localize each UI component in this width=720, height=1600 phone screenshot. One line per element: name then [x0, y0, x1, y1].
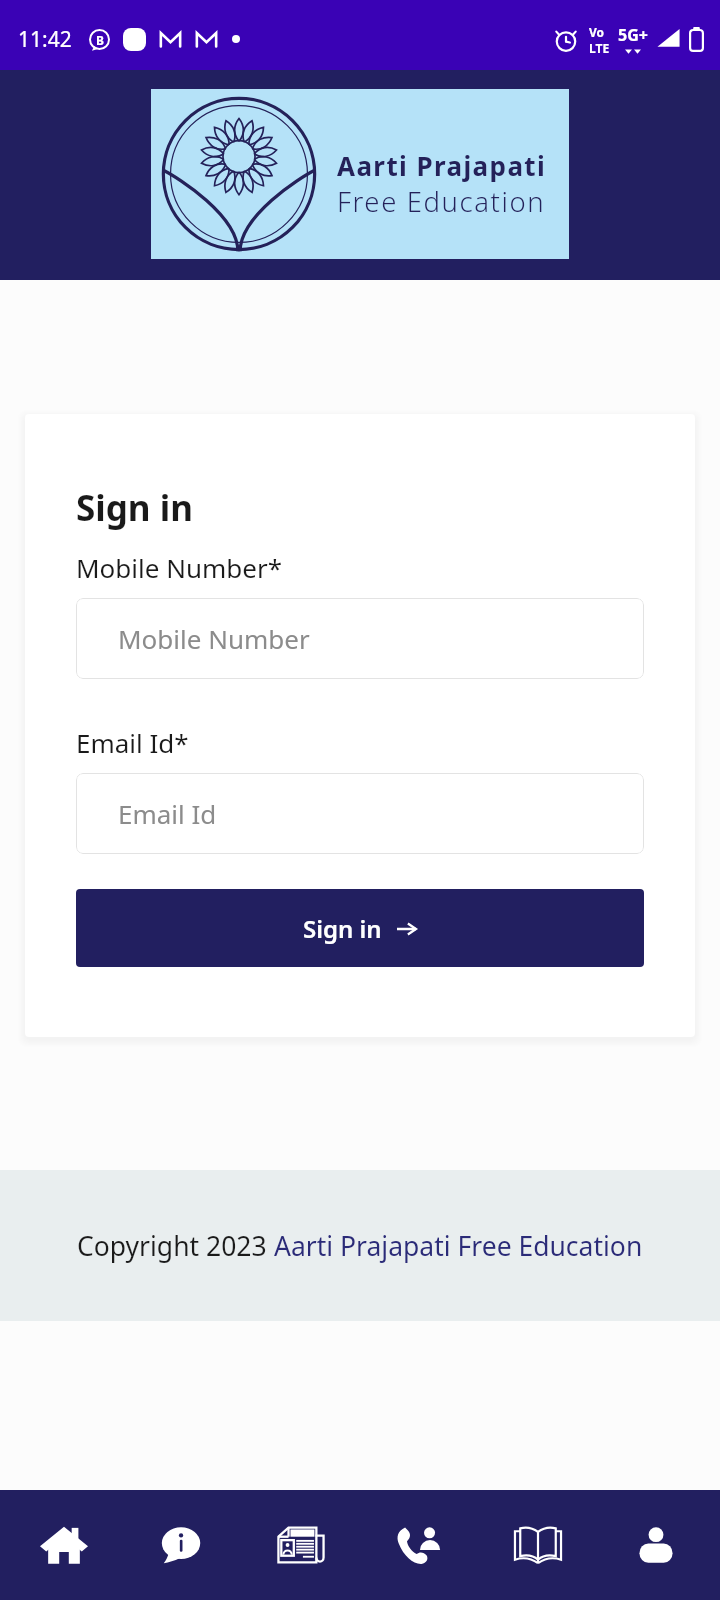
- button[interactable]: Courses: [483, 1490, 593, 1600]
- staticText: Mobile Number: [118, 621, 310, 656]
- button[interactable]: Email Id: [76, 773, 644, 854]
- staticText: Email Id: [118, 796, 217, 831]
- staticText: 11:42: [18, 25, 72, 54]
- staticText: Copyright 2023: [77, 1228, 274, 1264]
- button[interactable]: Aarti Prajapati Free Education: [274, 1228, 643, 1264]
- staticText: Sign in: [303, 912, 382, 945]
- button[interactable]: Contact: [364, 1490, 474, 1600]
- button[interactable]: Sign in: [76, 889, 644, 967]
- staticText: LTE: [589, 40, 610, 54]
- button[interactable]: Home: [9, 1490, 119, 1600]
- staticText: Email Id*: [76, 725, 189, 760]
- staticText: Mobile Number*: [76, 550, 282, 585]
- staticText: Free Education: [337, 183, 546, 220]
- staticText: Aarti Prajapati: [337, 148, 547, 183]
- staticText: Vo: [589, 24, 605, 40]
- staticText: B: [96, 32, 104, 48]
- button[interactable]: News: [246, 1490, 356, 1600]
- button[interactable]: Mobile Number: [76, 598, 644, 679]
- staticText: 5G+: [618, 24, 648, 46]
- staticText: Sign in: [76, 484, 193, 532]
- button[interactable]: Profile: [601, 1490, 711, 1600]
- button[interactable]: Information: [127, 1490, 237, 1600]
